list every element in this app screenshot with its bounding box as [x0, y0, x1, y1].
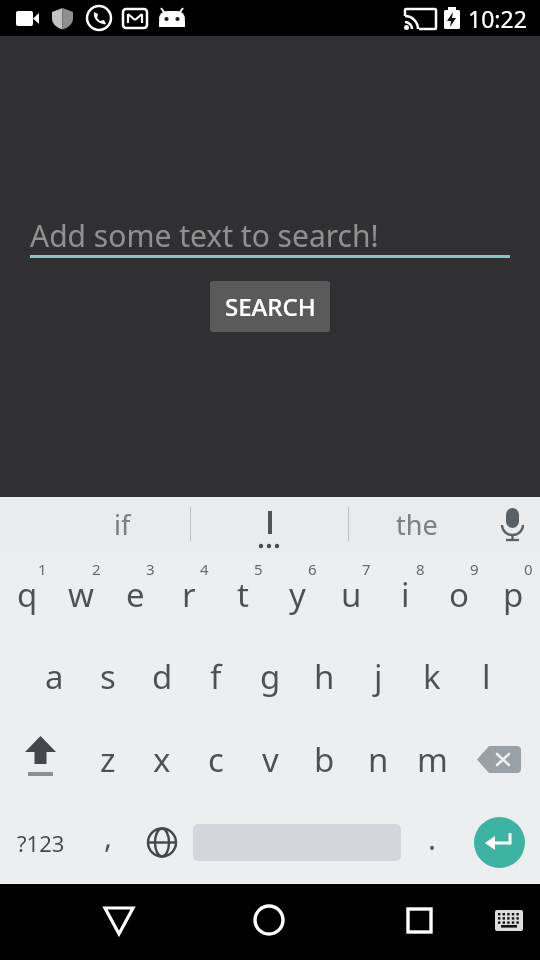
button[interactable]: e: [108, 552, 162, 635]
staticText: w: [68, 572, 94, 617]
button[interactable]: r: [162, 552, 216, 635]
button[interactable]: if: [55, 497, 190, 552]
staticText: o: [449, 572, 469, 617]
staticText: the: [396, 506, 438, 543]
staticText: 6: [308, 559, 317, 579]
button[interactable]: .: [405, 801, 459, 884]
staticText: e: [126, 572, 145, 617]
button[interactable]: p: [486, 552, 540, 635]
button[interactable]: x: [135, 718, 189, 801]
staticText: 4: [200, 559, 209, 579]
staticText: k: [423, 654, 441, 699]
button[interactable]: ?123: [0, 801, 81, 884]
button[interactable]: v: [243, 718, 297, 801]
button[interactable]: [479, 884, 539, 960]
button[interactable]: [240, 884, 300, 960]
staticText: r: [182, 572, 196, 617]
staticText: 2: [92, 559, 101, 579]
staticText: 9: [470, 559, 479, 579]
button[interactable]: h: [297, 635, 351, 718]
staticText: l: [482, 654, 491, 699]
button[interactable]: a: [27, 635, 81, 718]
staticText: .: [428, 818, 437, 859]
button[interactable]: f: [189, 635, 243, 718]
button[interactable]: [485, 497, 540, 552]
staticText: ?123: [17, 828, 65, 858]
staticText: j: [374, 654, 383, 699]
button[interactable]: [459, 718, 540, 801]
button[interactable]: [90, 884, 150, 960]
button[interactable]: j: [351, 635, 405, 718]
button[interactable]: s: [81, 635, 135, 718]
button[interactable]: [459, 801, 540, 884]
button[interactable]: [135, 801, 189, 884]
button[interactable]: u: [324, 552, 378, 635]
staticText: g: [260, 654, 281, 699]
button[interactable]: [0, 718, 81, 801]
staticText: b: [314, 737, 335, 782]
staticText: SEARCH: [225, 290, 316, 323]
button[interactable]: k: [405, 635, 459, 718]
button[interactable]: [389, 884, 449, 960]
button[interactable]: SEARCH: [210, 281, 330, 332]
button[interactable]: the: [349, 497, 484, 552]
staticText: 7: [362, 559, 371, 579]
staticText: d: [152, 654, 173, 699]
button[interactable]: i: [378, 552, 432, 635]
button[interactable]: ,: [81, 801, 135, 884]
button[interactable]: w: [54, 552, 108, 635]
staticText: if: [114, 506, 131, 543]
staticText: q: [17, 572, 38, 617]
staticText: n: [368, 737, 389, 782]
button[interactable]: y: [270, 552, 324, 635]
staticText: Add some text to search!: [30, 215, 379, 256]
staticText: h: [314, 654, 335, 699]
button[interactable]: z: [81, 718, 135, 801]
button[interactable]: o: [432, 552, 486, 635]
staticText: 8: [416, 559, 425, 579]
staticText: f: [210, 654, 222, 699]
staticText: 0: [524, 559, 533, 579]
button[interactable]: t: [216, 552, 270, 635]
staticText: z: [100, 737, 116, 782]
button[interactable]: [189, 801, 405, 884]
staticText: i: [401, 572, 410, 617]
staticText: v: [262, 737, 279, 782]
staticText: p: [503, 572, 524, 617]
staticText: 10:22: [468, 3, 527, 34]
staticText: 3: [146, 559, 155, 579]
button[interactable]: l: [459, 635, 513, 718]
button[interactable]: c: [189, 718, 243, 801]
staticText: s: [100, 654, 116, 699]
staticText: x: [153, 737, 171, 782]
staticText: 1: [38, 559, 47, 579]
button[interactable]: d: [135, 635, 189, 718]
button[interactable]: n: [351, 718, 405, 801]
staticText: ,: [104, 816, 113, 857]
button[interactable]: m: [405, 718, 459, 801]
staticText: u: [341, 572, 362, 617]
button[interactable]: b: [297, 718, 351, 801]
staticText: m: [417, 737, 448, 782]
staticText: 5: [254, 559, 263, 579]
staticText: t: [237, 572, 249, 617]
button[interactable]: g: [243, 635, 297, 718]
staticText: c: [208, 737, 224, 782]
staticText: a: [45, 654, 64, 699]
button[interactable]: [191, 497, 348, 552]
button[interactable]: q: [0, 552, 54, 635]
staticText: y: [289, 572, 306, 617]
